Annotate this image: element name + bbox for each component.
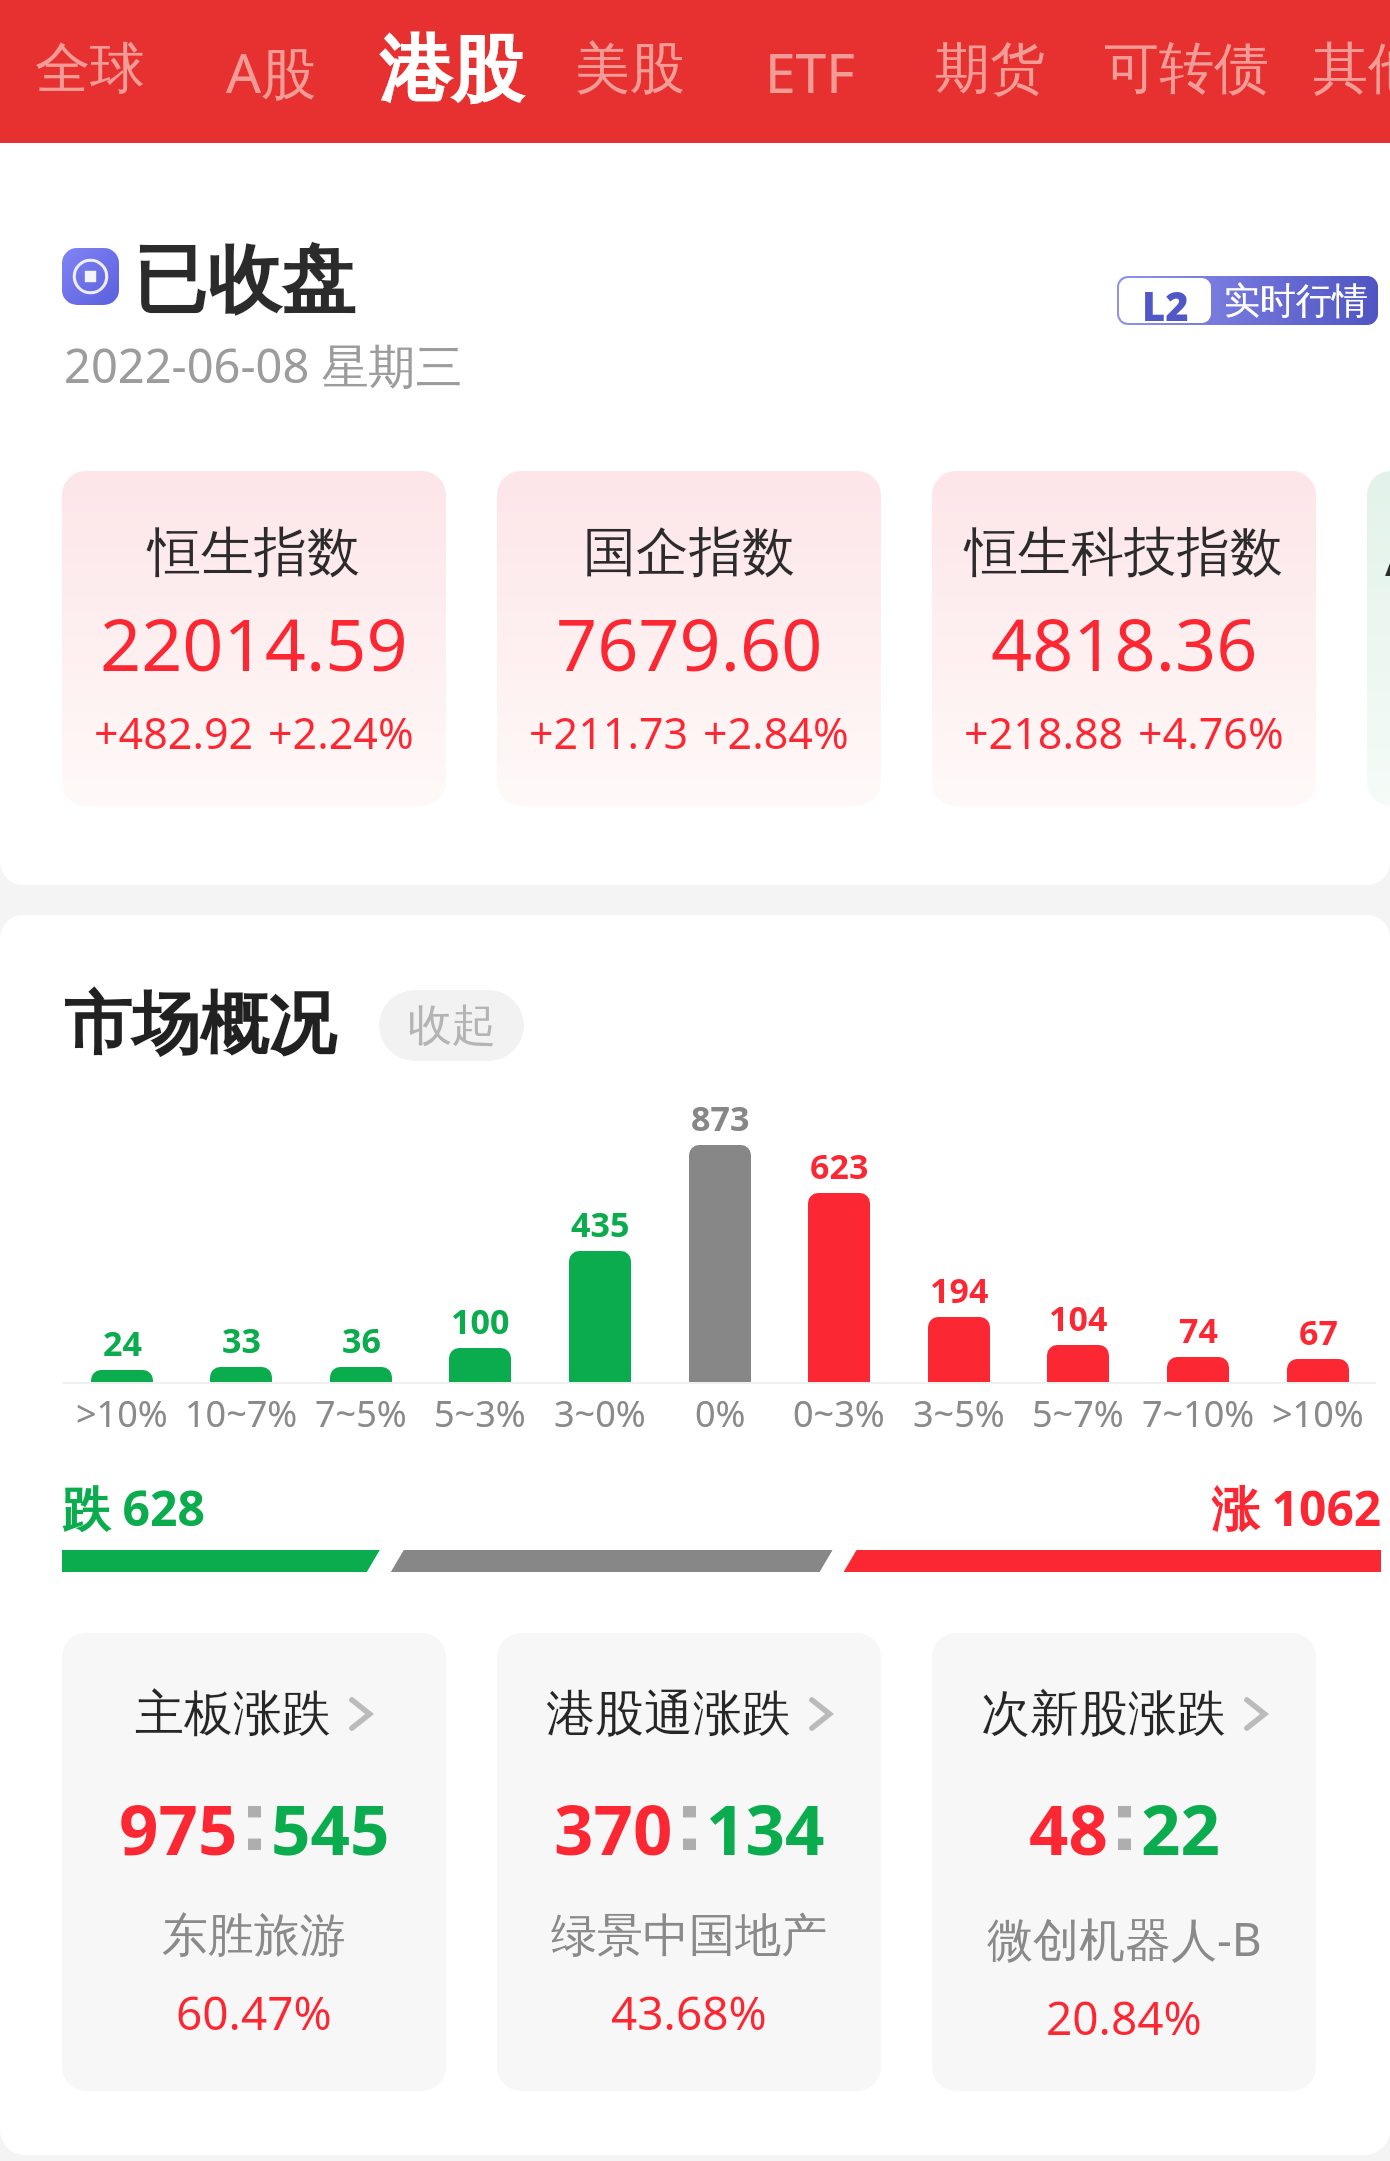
staticText: 收起 <box>408 998 496 1053</box>
staticText: 美股 <box>575 34 685 103</box>
staticText: 43.68% <box>611 1981 767 2044</box>
staticText: 已收盘 <box>133 234 355 327</box>
staticText: 435 <box>571 1201 630 1247</box>
staticText: 7~10% <box>1142 1389 1255 1438</box>
staticText: 港股 <box>379 25 523 116</box>
staticText: 4818.36 <box>991 594 1258 692</box>
staticText: 东胜旅游 <box>162 1907 346 1965</box>
staticText: +218.88 <box>964 703 1124 762</box>
staticText: 5~3% <box>434 1389 526 1438</box>
staticText: 7679.60 <box>556 594 823 692</box>
staticText: 370 <box>554 1781 673 1875</box>
button[interactable]: 期货 <box>880 0 1100 143</box>
staticText: 次新股涨跌 <box>981 1683 1226 1745</box>
staticText: +4.76% <box>1138 703 1284 762</box>
button[interactable]: 恒生科技指数 <box>932 471 1316 806</box>
staticText: 104 <box>1049 1295 1108 1341</box>
button[interactable]: 主板涨跌 <box>62 1633 446 2091</box>
staticText: 10~7% <box>185 1389 298 1438</box>
staticText: 36 <box>342 1317 381 1363</box>
button[interactable]: 次新股涨跌 <box>932 1633 1316 2091</box>
staticText: 0~3% <box>793 1389 885 1438</box>
staticText: 24 <box>103 1320 142 1366</box>
staticText: 国企指数 <box>583 519 795 586</box>
staticText: 绿景中国地产 <box>551 1907 827 1965</box>
staticText: 恒生科技指数 <box>965 519 1283 586</box>
staticText: 实时行情 <box>1224 278 1368 323</box>
staticText: 48 <box>1029 1781 1108 1875</box>
button[interactable]: 港股 <box>341 0 561 143</box>
staticText: 3~0% <box>554 1389 646 1438</box>
button[interactable]: Market status <box>62 248 119 305</box>
staticText: 33 <box>222 1317 261 1363</box>
staticText: L2 <box>1142 278 1189 323</box>
button[interactable]: AH股溢价指数 <box>1367 471 1390 806</box>
staticText: 5~7% <box>1032 1389 1124 1438</box>
button[interactable]: 美股 <box>520 0 740 143</box>
staticText: 975 <box>119 1781 238 1875</box>
staticText: 微创机器人-B <box>987 1907 1262 1970</box>
staticText: +211.73 <box>529 703 689 762</box>
staticText: +2.84% <box>703 703 849 762</box>
staticText: >10% <box>1272 1389 1364 1438</box>
staticText: 全球 <box>35 34 145 103</box>
staticText: 可转债 <box>1104 34 1269 103</box>
staticText: 0% <box>695 1389 746 1438</box>
button[interactable]: 国企指数 <box>497 471 881 806</box>
button[interactable]: L2 <box>1117 276 1378 325</box>
staticText: 22014.59 <box>100 594 408 692</box>
staticText: 跌 628 <box>62 1475 205 1541</box>
staticText: 7~5% <box>315 1389 407 1438</box>
staticText: 22 <box>1141 1781 1220 1875</box>
button[interactable]: 恒生指数 <box>62 471 446 806</box>
staticText: 20.84% <box>1046 1986 1202 2049</box>
button[interactable]: 全球 <box>0 0 200 143</box>
staticText: 涨 1062 <box>1211 1475 1382 1541</box>
staticText: A股 <box>226 34 317 109</box>
button[interactable]: 港股通涨跌 <box>497 1633 881 2091</box>
button[interactable]: 收起 <box>379 990 524 1061</box>
staticText: 主板涨跌 <box>135 1683 331 1745</box>
button[interactable]: 其他 <box>1258 0 1390 143</box>
button[interactable]: A股 <box>161 0 381 143</box>
button[interactable]: 可转债 <box>1076 0 1296 143</box>
staticText: 67 <box>1299 1309 1338 1355</box>
staticText: 港股通涨跌 <box>546 1683 791 1745</box>
staticText: +482.92 <box>94 703 254 762</box>
staticText: 134 <box>706 1781 825 1875</box>
staticText: 恒生指数 <box>148 519 360 586</box>
staticText: >10% <box>76 1389 168 1438</box>
staticText: AH股溢价指数 <box>1385 519 1390 591</box>
staticText: 623 <box>810 1143 869 1189</box>
staticText: 3~5% <box>913 1389 1005 1438</box>
staticText: 市场概况 <box>64 982 336 1068</box>
staticText: 其他 <box>1313 34 1390 103</box>
staticText: 873 <box>691 1095 750 1141</box>
staticText: 194 <box>930 1267 989 1313</box>
staticText: 期货 <box>935 34 1045 103</box>
button[interactable]: ETF <box>700 0 920 143</box>
staticText: 60.47% <box>176 1981 332 2044</box>
staticText: 100 <box>451 1298 510 1344</box>
staticText: 545 <box>271 1781 390 1875</box>
staticText: 2022-06-08 星期三 <box>64 333 463 397</box>
staticText: ETF <box>765 34 855 109</box>
staticText: +2.24% <box>268 703 414 762</box>
staticText: 74 <box>1179 1307 1218 1353</box>
